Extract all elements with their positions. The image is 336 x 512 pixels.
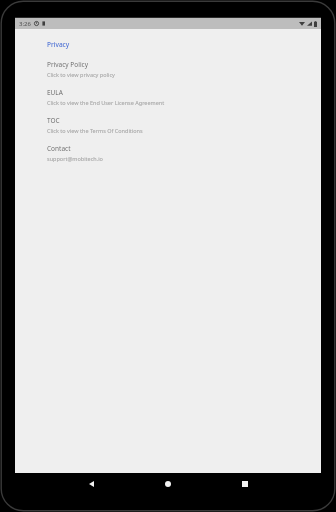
button[interactable]: Privacy Policy — [15, 59, 321, 79]
button[interactable]: Home — [161, 477, 175, 491]
button[interactable]: Recent apps — [238, 477, 252, 491]
button[interactable]: EULA — [15, 87, 321, 107]
staticText: EULA — [47, 88, 63, 97]
staticText: Click to view the Terms Of Conditions — [47, 127, 143, 134]
staticText: support@mobitech.io — [47, 155, 103, 162]
button[interactable]: Contact — [15, 143, 321, 163]
staticText: TOC — [47, 116, 60, 125]
button[interactable]: TOC — [15, 115, 321, 135]
staticText: Click to view the End User License Agree… — [47, 99, 165, 106]
staticText: 3:26 — [19, 20, 31, 28]
button[interactable]: Back — [84, 477, 98, 491]
staticText: Contact — [47, 144, 71, 153]
staticText: Privacy Policy — [47, 60, 89, 69]
staticText: Click to view privacy policy — [47, 71, 115, 78]
staticText: Privacy — [47, 40, 70, 49]
